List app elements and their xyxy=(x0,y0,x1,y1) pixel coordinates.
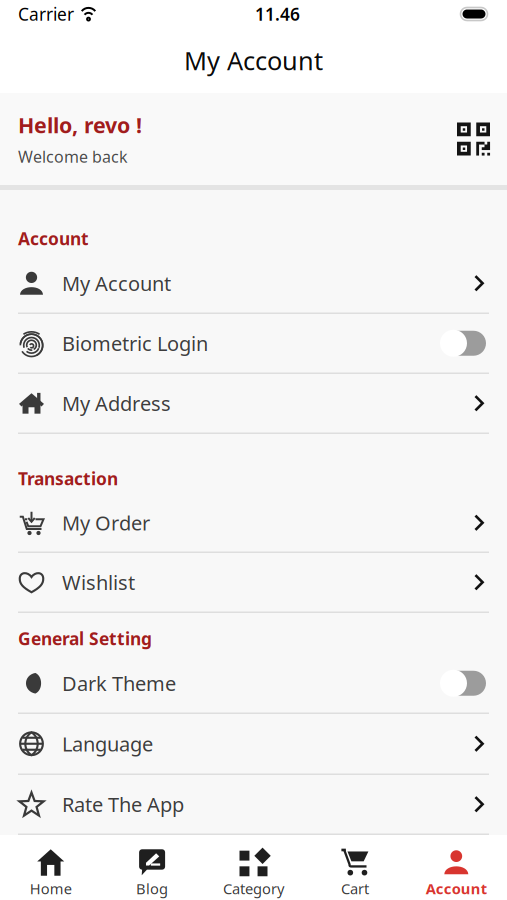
staticText: Welcome back xyxy=(18,146,128,167)
button[interactable]: Scan QR code xyxy=(457,122,490,155)
button[interactable]: Cart xyxy=(304,835,406,900)
staticText: Dark Theme xyxy=(62,670,176,697)
button[interactable]: Category xyxy=(203,835,304,900)
staticText: Language xyxy=(62,730,153,757)
button[interactable]: Blog xyxy=(101,835,203,900)
staticText: Account xyxy=(18,227,89,250)
staticText: Biometric Login xyxy=(62,330,208,357)
staticText: My Address xyxy=(62,390,171,417)
button[interactable]: Wishlist xyxy=(0,553,507,613)
staticText: Home xyxy=(30,879,72,898)
staticText: Carrier xyxy=(18,2,74,25)
staticText: Account xyxy=(426,879,487,898)
button[interactable]: Account xyxy=(406,835,507,900)
button[interactable]: My Order xyxy=(0,494,507,553)
staticText: My Order xyxy=(62,509,150,536)
staticText: Blog xyxy=(136,879,168,898)
staticText: 11.46 xyxy=(255,2,300,25)
staticText: Transaction xyxy=(18,467,118,490)
button[interactable]: Biometric Login xyxy=(0,314,507,374)
staticText: Cart xyxy=(341,879,369,898)
button[interactable]: Dark Theme xyxy=(0,654,507,714)
button[interactable]: Home xyxy=(0,835,101,900)
staticText: General Setting xyxy=(18,627,152,650)
staticText: Rate The App xyxy=(62,791,184,818)
staticText: Hello, revo ! xyxy=(18,111,142,139)
button[interactable]: My Address xyxy=(0,374,507,434)
staticText: Category xyxy=(223,879,284,898)
staticText: My Account xyxy=(184,44,323,77)
staticText: Wishlist xyxy=(62,569,135,596)
staticText: My Account xyxy=(62,270,171,297)
button[interactable]: Rate The App xyxy=(0,775,507,835)
button[interactable]: My Account xyxy=(0,254,507,314)
button[interactable]: Language xyxy=(0,714,507,775)
